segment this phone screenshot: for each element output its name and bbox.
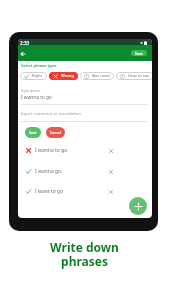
- staticText: Input comment or translation: [21, 110, 81, 116]
- button[interactable]: Back: [18, 49, 28, 59]
- staticText: Wrong: [61, 73, 74, 79]
- staticText: I wanna go: [35, 168, 62, 175]
- staticText: Not used: [92, 73, 110, 79]
- staticText: Save: [135, 51, 143, 56]
- staticText: Select phrase type: [21, 63, 56, 68]
- button[interactable]: Save: [25, 127, 41, 138]
- staticText: Save: [29, 130, 37, 135]
- button[interactable]: Add: [129, 197, 147, 215]
- button[interactable]: Cancel: [46, 127, 65, 138]
- button[interactable]: I want to go: [18, 181, 152, 202]
- button[interactable]: I wanna go: [18, 161, 152, 182]
- button[interactable]: Delete: [106, 146, 115, 155]
- staticText: I want to go: [35, 188, 64, 195]
- button[interactable]: I wanna to go: [18, 140, 152, 161]
- staticText: Input phrase: [21, 89, 40, 93]
- staticText: How to say: [128, 73, 150, 79]
- button[interactable]: How to say: [116, 72, 152, 80]
- staticText: I wanna to go: [21, 94, 52, 101]
- button[interactable]: Delete: [106, 187, 115, 196]
- staticText: Write down phrases: [0, 239, 169, 269]
- button[interactable]: Not used: [80, 72, 114, 80]
- staticText: Cancel: [50, 130, 61, 135]
- button[interactable]: Delete: [106, 167, 115, 176]
- button[interactable]: Save: [131, 50, 147, 56]
- button[interactable]: Right: [20, 72, 47, 80]
- staticText: Right: [32, 73, 43, 79]
- staticText: I wanna to go: [35, 147, 68, 154]
- staticText: 2:33: [20, 40, 30, 46]
- button[interactable]: Wrong: [49, 72, 78, 80]
